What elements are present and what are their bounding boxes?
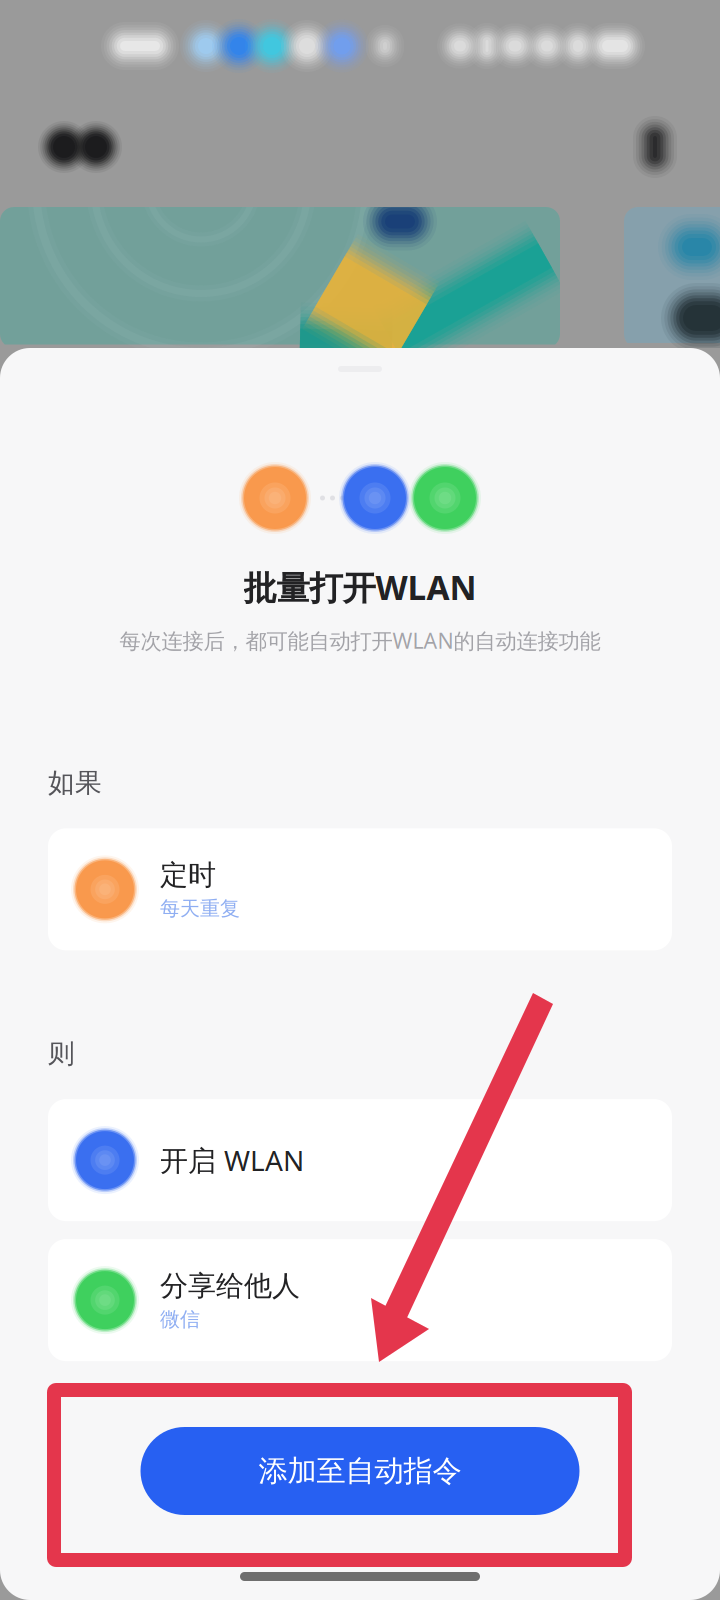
staticText: 微信 xyxy=(160,1307,200,1332)
staticText: 添加至自动指令 xyxy=(258,1453,461,1489)
button[interactable]: 定时 xyxy=(48,828,672,950)
staticText: 则 xyxy=(48,1037,75,1070)
button[interactable]: 开启 WLAN xyxy=(48,1099,672,1221)
staticText: 如果 xyxy=(48,767,102,799)
staticText: 每次连接后，都可能自动打开WLAN的自动连接功能 xyxy=(119,626,600,655)
staticText: 批量打开WLAN xyxy=(243,565,476,609)
staticText: 定时 xyxy=(160,858,216,892)
button[interactable]: 分享给他人 xyxy=(48,1239,672,1361)
button[interactable]: 添加至自动指令 xyxy=(140,1427,579,1515)
staticText: 开启 WLAN xyxy=(160,1141,304,1179)
staticText: 分享给他人 xyxy=(160,1269,300,1303)
staticText: 每天重复 xyxy=(160,896,240,921)
